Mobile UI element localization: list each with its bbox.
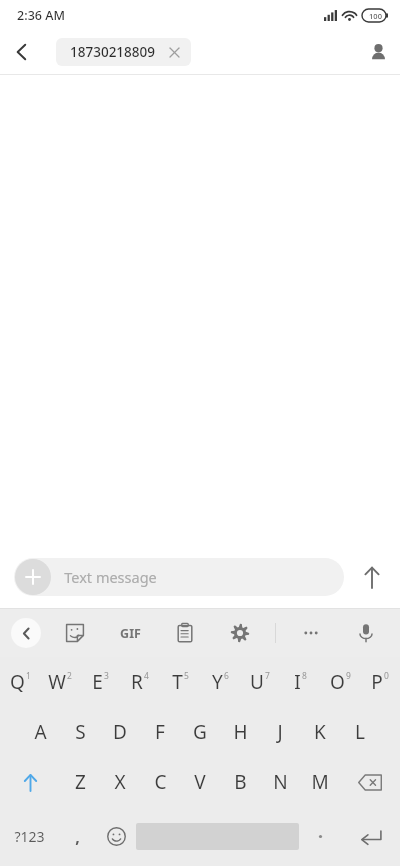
button[interactable]: A bbox=[20, 707, 60, 757]
button[interactable]: I bbox=[280, 657, 320, 707]
staticText: Q bbox=[10, 669, 25, 695]
staticText: 7 bbox=[265, 670, 270, 682]
button[interactable]: S bbox=[60, 707, 100, 757]
button[interactable]: J bbox=[260, 707, 300, 757]
button[interactable]: Contact details bbox=[356, 30, 400, 74]
staticText: 4 bbox=[144, 670, 149, 682]
staticText: G bbox=[193, 719, 207, 745]
button[interactable]: K bbox=[300, 707, 340, 757]
staticText: Y bbox=[212, 669, 223, 695]
staticText: 8 bbox=[302, 670, 307, 682]
staticText: 6 bbox=[224, 670, 229, 682]
staticText: J bbox=[277, 719, 283, 745]
button[interactable]: F bbox=[140, 707, 180, 757]
button[interactable]: H bbox=[220, 707, 260, 757]
staticText: M bbox=[311, 769, 329, 795]
staticText: R bbox=[131, 669, 143, 695]
staticText: Text message bbox=[64, 567, 157, 587]
staticText: 1 bbox=[26, 670, 31, 682]
staticText: O bbox=[330, 669, 345, 695]
staticText: B bbox=[234, 769, 247, 795]
button[interactable]: More options bbox=[291, 613, 331, 653]
staticText: H bbox=[233, 719, 248, 745]
staticText: N bbox=[273, 769, 288, 795]
button[interactable]: C bbox=[140, 757, 180, 807]
button[interactable]: , bbox=[58, 807, 97, 866]
button[interactable]: P bbox=[360, 657, 400, 707]
staticText: Z bbox=[75, 769, 86, 795]
button[interactable] bbox=[299, 807, 342, 866]
button[interactable]: U bbox=[240, 657, 280, 707]
button[interactable]: Stickers bbox=[55, 613, 95, 653]
staticText: T bbox=[172, 669, 183, 695]
staticText: K bbox=[314, 719, 326, 745]
staticText: W bbox=[48, 669, 66, 695]
staticText: X bbox=[114, 769, 126, 795]
button[interactable]: W bbox=[40, 657, 80, 707]
button[interactable]: E bbox=[80, 657, 120, 707]
button[interactable]: X bbox=[100, 757, 140, 807]
button[interactable]: Emoji bbox=[97, 807, 136, 866]
staticText: 2 bbox=[67, 670, 72, 682]
staticText: A bbox=[34, 719, 47, 745]
button[interactable]: B bbox=[220, 757, 260, 807]
button[interactable]: Shift bbox=[0, 757, 60, 807]
staticText: I bbox=[294, 669, 301, 695]
staticText: 18730218809 bbox=[70, 43, 155, 61]
staticText: GIF bbox=[120, 625, 141, 642]
staticText: 100 bbox=[369, 11, 382, 21]
button[interactable]: T bbox=[160, 657, 200, 707]
button[interactable]: Clipboard bbox=[165, 613, 205, 653]
staticText: ?123 bbox=[14, 827, 45, 846]
staticText: L bbox=[355, 719, 365, 745]
staticText: 9 bbox=[346, 670, 351, 682]
staticText: S bbox=[75, 719, 86, 745]
button[interactable]: Attach bbox=[15, 559, 51, 595]
button[interactable]: Q bbox=[0, 657, 40, 707]
staticText: P bbox=[371, 669, 383, 695]
button[interactable]: ?123 bbox=[0, 807, 58, 866]
button[interactable]: D bbox=[100, 707, 140, 757]
staticText: 3 bbox=[104, 670, 109, 682]
staticText: 0 bbox=[384, 670, 389, 682]
button[interactable]: V bbox=[180, 757, 220, 807]
staticText: D bbox=[113, 719, 127, 745]
button[interactable]: Backspace bbox=[340, 757, 400, 807]
button[interactable]: M bbox=[300, 757, 340, 807]
staticText: 2:36 AM bbox=[17, 7, 65, 24]
button[interactable]: Back bbox=[0, 30, 44, 74]
staticText: C bbox=[154, 769, 167, 795]
button[interactable]: Voice input bbox=[346, 613, 386, 653]
button[interactable]: Close toolbar bbox=[11, 618, 41, 648]
button[interactable]: N bbox=[260, 757, 300, 807]
button[interactable]: Settings bbox=[220, 613, 260, 653]
button[interactable]: Attach bbox=[14, 558, 344, 596]
button[interactable]: O bbox=[320, 657, 360, 707]
button[interactable]: 18730218809 bbox=[56, 38, 191, 66]
button[interactable]: Send bbox=[344, 549, 400, 605]
staticText: V bbox=[194, 769, 206, 795]
button[interactable]: Y bbox=[200, 657, 240, 707]
staticText: E bbox=[92, 669, 103, 695]
button[interactable]: GIF bbox=[110, 613, 150, 653]
staticText: U bbox=[250, 669, 264, 695]
button[interactable]: L bbox=[340, 707, 380, 757]
button[interactable]: G bbox=[180, 707, 220, 757]
button[interactable]: Z bbox=[60, 757, 100, 807]
button[interactable]: R bbox=[120, 657, 160, 707]
staticText: 5 bbox=[184, 670, 189, 682]
staticText: , bbox=[75, 826, 80, 848]
button[interactable]: Remove recipient bbox=[165, 43, 183, 61]
staticText: F bbox=[155, 719, 165, 745]
button[interactable]: Enter bbox=[342, 807, 400, 866]
